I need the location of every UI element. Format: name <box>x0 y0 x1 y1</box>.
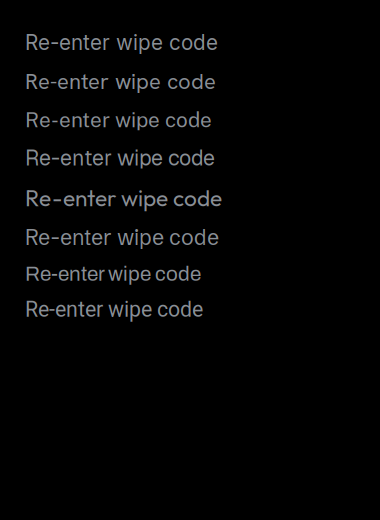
staticText: Re-enter wipe code <box>25 67 216 96</box>
staticText: Re-enter wipe code <box>25 108 212 132</box>
staticText: Re-enter wipe code <box>25 263 201 285</box>
staticText: Re-enter wipe code <box>25 297 203 322</box>
staticText: Re-enter wipe code <box>25 144 215 172</box>
staticText: Re-enter wipe code <box>25 184 222 212</box>
staticText: Re-enter wipe code <box>25 30 218 55</box>
staticText: Re-enter wipe code <box>25 224 219 250</box>
